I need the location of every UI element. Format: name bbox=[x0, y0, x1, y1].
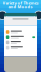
button[interactable] bbox=[4, 29, 37, 35]
staticText: and Moods bbox=[8, 4, 32, 9]
button[interactable] bbox=[4, 35, 37, 40]
button[interactable] bbox=[4, 45, 37, 50]
staticText: Variety of Themes bbox=[2, 0, 38, 6]
button[interactable] bbox=[4, 40, 37, 45]
